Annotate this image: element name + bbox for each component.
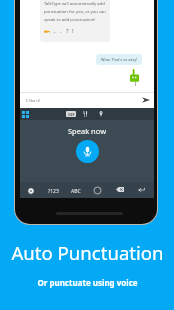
staticText: TalkType will automatically add punctuat… <box>44 1 108 23</box>
button[interactable]: Enter <box>138 187 145 192</box>
staticText: I like it! <box>26 98 41 104</box>
staticText: GIF <box>68 112 75 117</box>
staticText: Speak now <box>68 126 107 136</box>
staticText: Auto Punctuation <box>11 240 164 265</box>
button[interactable]: ABC <box>71 188 81 195</box>
button[interactable]: Location <box>99 111 103 117</box>
staticText: ! <box>72 27 74 35</box>
button[interactable]: Emoji <box>94 187 101 194</box>
button[interactable]: Backspace <box>116 187 124 192</box>
staticText: Wow. That's so easy! <box>101 57 138 62</box>
staticText: . <box>60 27 62 35</box>
button[interactable]: Microphone <box>76 140 99 163</box>
button[interactable]: Food <box>83 111 88 117</box>
staticText: Or punctuate using voice <box>37 277 138 288</box>
button[interactable]: Apps <box>20 109 30 119</box>
staticText: , <box>54 27 56 35</box>
button[interactable]: ?123 <box>48 188 59 195</box>
button[interactable]: Send <box>142 97 150 103</box>
button[interactable]: Settings <box>28 188 34 194</box>
button[interactable]: GIF <box>66 111 76 117</box>
staticText: ? <box>66 27 69 35</box>
